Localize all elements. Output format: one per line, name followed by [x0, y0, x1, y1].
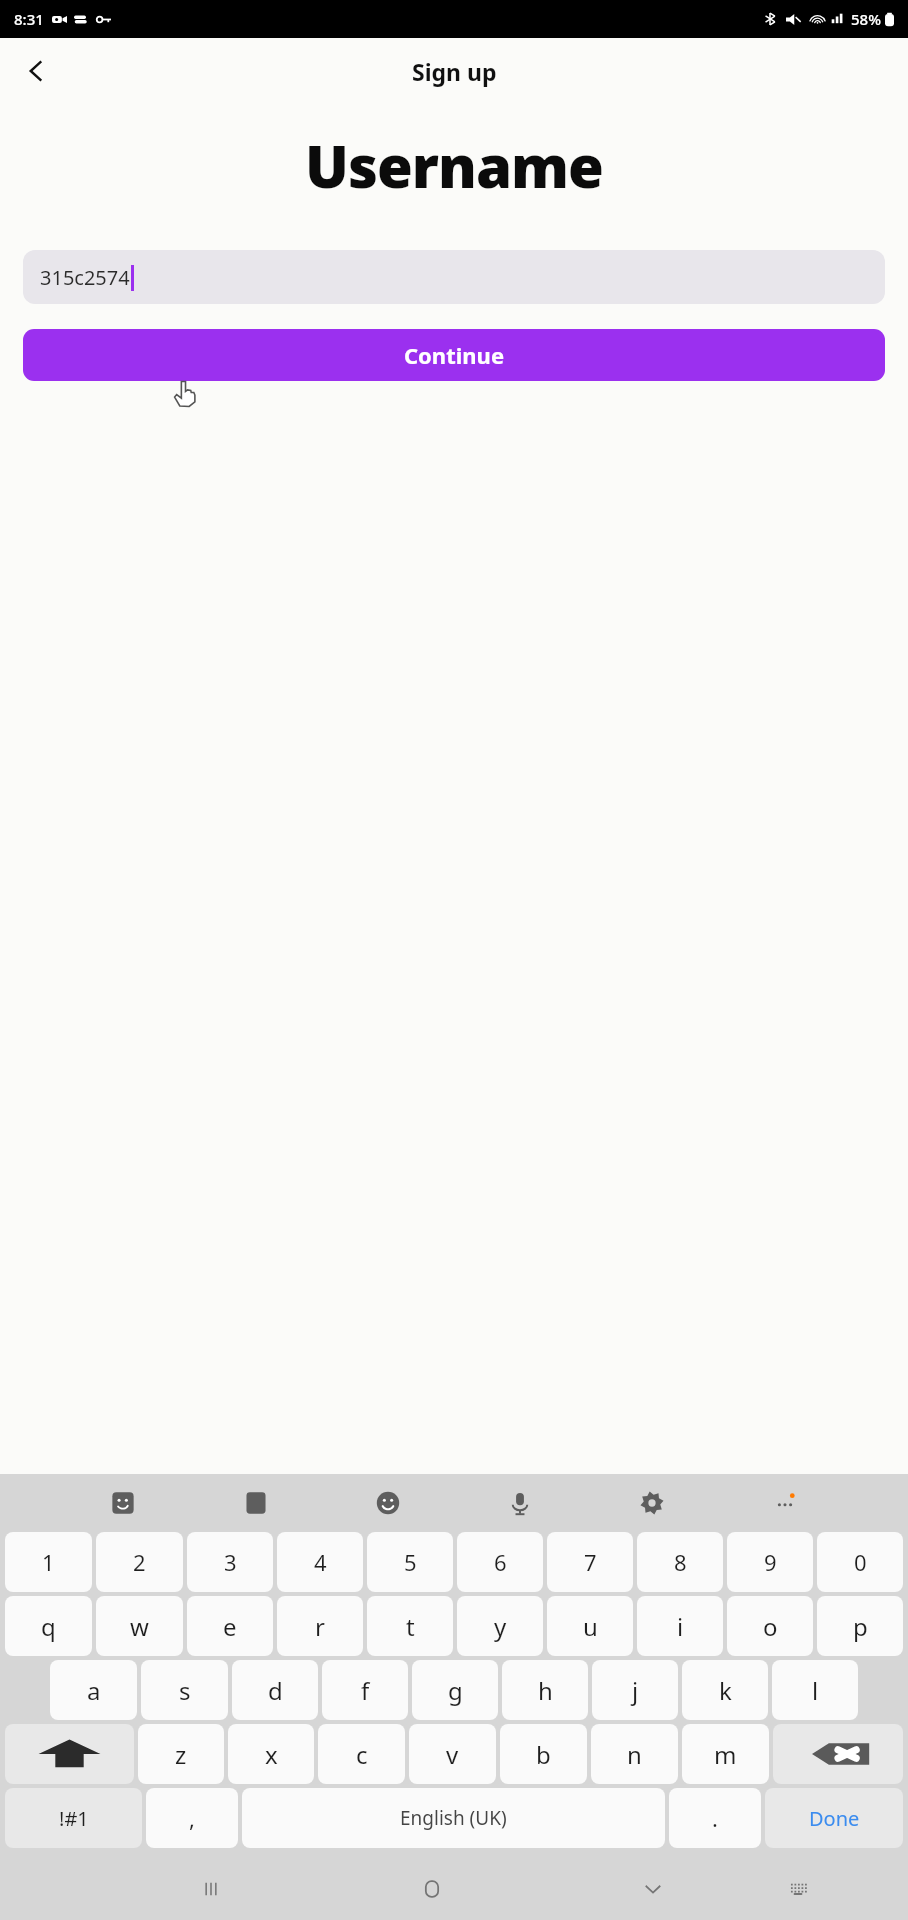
- staticText: d: [268, 1674, 283, 1707]
- staticText: English (UK): [400, 1805, 507, 1831]
- button[interactable]: 8: [637, 1532, 723, 1592]
- button[interactable]: d: [232, 1660, 318, 1720]
- staticText: 8: [674, 1547, 687, 1577]
- staticText: 58%: [851, 9, 881, 29]
- staticText: 6: [494, 1547, 507, 1577]
- button[interactable]: Emoji: [365, 1480, 411, 1526]
- button[interactable]: Stickers: [100, 1480, 146, 1526]
- staticText: l: [812, 1674, 819, 1707]
- staticText: 0: [854, 1547, 867, 1577]
- staticText: v: [446, 1738, 459, 1771]
- button[interactable]: Back: [8, 43, 64, 99]
- button[interactable]: q: [5, 1596, 92, 1656]
- button[interactable]: j: [592, 1660, 678, 1720]
- button[interactable]: g: [412, 1660, 498, 1720]
- button[interactable]: 4: [277, 1532, 363, 1592]
- button[interactable]: 9: [727, 1532, 813, 1592]
- button[interactable]: Change keyboard: [772, 1863, 824, 1915]
- button[interactable]: r: [277, 1596, 363, 1656]
- staticText: 4: [314, 1547, 327, 1577]
- button[interactable]: s: [141, 1660, 228, 1720]
- button[interactable]: y: [457, 1596, 543, 1656]
- staticText: j: [632, 1674, 639, 1707]
- staticText: y: [494, 1610, 507, 1643]
- staticText: h: [538, 1674, 553, 1707]
- staticText: 8:31: [14, 9, 44, 29]
- button[interactable]: Backspace: [773, 1724, 903, 1784]
- staticText: x: [265, 1738, 278, 1771]
- button[interactable]: v: [409, 1724, 496, 1784]
- staticText: g: [448, 1674, 463, 1707]
- staticText: !#1: [59, 1805, 89, 1832]
- staticText: 1: [42, 1547, 55, 1577]
- button[interactable]: 3: [187, 1532, 273, 1592]
- button[interactable]: GIF: [233, 1480, 279, 1526]
- staticText: b: [536, 1738, 551, 1771]
- staticText: .: [712, 1803, 718, 1833]
- staticText: i: [677, 1610, 684, 1643]
- button[interactable]: i: [637, 1596, 723, 1656]
- button[interactable]: b: [500, 1724, 587, 1784]
- staticText: 315c2574: [40, 264, 130, 291]
- staticText: ,: [189, 1803, 195, 1833]
- staticText: u: [583, 1610, 598, 1643]
- button[interactable]: 5: [367, 1532, 453, 1592]
- button[interactable]: Settings: [629, 1480, 675, 1526]
- button[interactable]: h: [502, 1660, 588, 1720]
- button[interactable]: 6: [457, 1532, 543, 1592]
- button[interactable]: Continue: [23, 329, 885, 381]
- staticText: r: [315, 1610, 325, 1643]
- staticText: o: [763, 1610, 778, 1643]
- staticText: a: [87, 1674, 101, 1707]
- staticText: Username: [0, 126, 908, 205]
- staticText: f: [361, 1674, 370, 1707]
- staticText: Done: [809, 1805, 860, 1832]
- button[interactable]: w: [96, 1596, 183, 1656]
- button[interactable]: Home: [406, 1863, 458, 1915]
- staticText: 2: [133, 1547, 146, 1577]
- staticText: q: [41, 1610, 56, 1643]
- staticText: 3: [224, 1547, 237, 1577]
- button[interactable]: 0: [817, 1532, 903, 1592]
- button[interactable]: More options: [762, 1480, 808, 1526]
- staticText: Continue: [404, 340, 505, 370]
- staticText: 5: [404, 1547, 417, 1577]
- button[interactable]: p: [817, 1596, 903, 1656]
- staticText: 7: [584, 1547, 597, 1577]
- button[interactable]: .: [669, 1788, 761, 1848]
- staticText: p: [853, 1610, 868, 1643]
- button[interactable]: k: [682, 1660, 768, 1720]
- button[interactable]: x: [228, 1724, 314, 1784]
- button[interactable]: l: [772, 1660, 858, 1720]
- staticText: c: [356, 1738, 368, 1771]
- staticText: 9: [764, 1547, 777, 1577]
- button[interactable]: 315c2574: [23, 250, 885, 304]
- staticText: e: [223, 1610, 237, 1643]
- button[interactable]: n: [591, 1724, 678, 1784]
- button[interactable]: z: [138, 1724, 224, 1784]
- button[interactable]: Recents: [185, 1863, 237, 1915]
- button[interactable]: English (UK): [242, 1788, 665, 1848]
- button[interactable]: ,: [146, 1788, 238, 1848]
- button[interactable]: m: [682, 1724, 769, 1784]
- button[interactable]: !#1: [5, 1788, 142, 1848]
- staticText: n: [627, 1738, 642, 1771]
- staticText: s: [179, 1674, 191, 1707]
- button[interactable]: e: [187, 1596, 273, 1656]
- button[interactable]: u: [547, 1596, 633, 1656]
- staticText: t: [406, 1610, 415, 1643]
- staticText: Sign up: [412, 56, 497, 87]
- button[interactable]: 2: [96, 1532, 183, 1592]
- button[interactable]: Voice input: [497, 1480, 543, 1526]
- button[interactable]: o: [727, 1596, 813, 1656]
- button[interactable]: 1: [5, 1532, 92, 1592]
- button[interactable]: Done: [765, 1788, 903, 1848]
- button[interactable]: c: [318, 1724, 405, 1784]
- button[interactable]: f: [322, 1660, 408, 1720]
- staticText: m: [714, 1738, 737, 1771]
- button[interactable]: Shift: [5, 1724, 134, 1784]
- button[interactable]: 7: [547, 1532, 633, 1592]
- button[interactable]: a: [50, 1660, 137, 1720]
- button[interactable]: t: [367, 1596, 453, 1656]
- button[interactable]: Hide keyboard: [627, 1863, 679, 1915]
